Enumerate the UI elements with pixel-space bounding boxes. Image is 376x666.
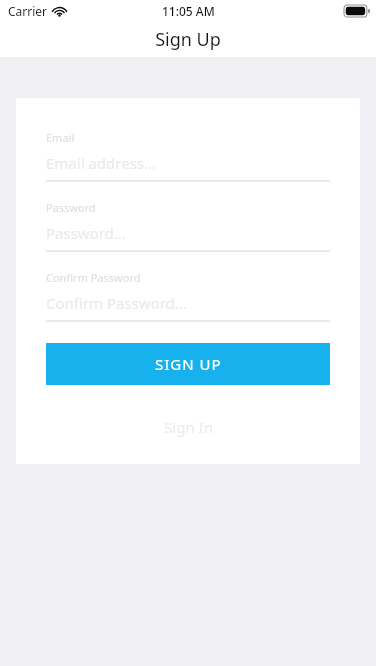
- staticText: Confirm Password...: [46, 293, 187, 313]
- staticText: Email: [46, 130, 75, 145]
- button[interactable]: Email: [46, 128, 330, 188]
- staticText: SIGN UP: [155, 354, 222, 374]
- staticText: Sign In: [164, 417, 213, 437]
- staticText: Password...: [46, 223, 126, 243]
- other: Battery: [344, 5, 370, 17]
- staticText: Password: [46, 200, 96, 215]
- button[interactable]: Password: [46, 198, 330, 258]
- staticText: Email address...: [46, 153, 157, 173]
- button[interactable]: Confirm Password: [46, 268, 330, 328]
- button[interactable]: SIGN UP: [46, 343, 330, 385]
- staticText: Carrier: [8, 3, 48, 19]
- staticText: 11:05 AM: [162, 3, 215, 19]
- staticText: Confirm Password: [46, 270, 141, 285]
- staticText: Sign Up: [155, 27, 221, 52]
